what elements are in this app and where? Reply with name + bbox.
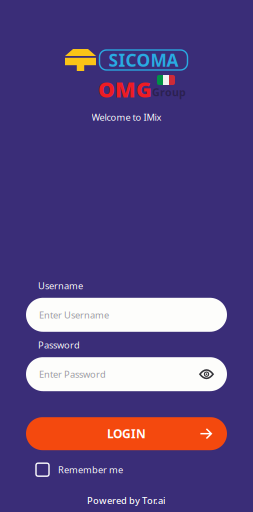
button[interactable]: Remember me xyxy=(36,463,227,476)
staticText: SICOMA xyxy=(108,48,178,71)
staticText: Remember me xyxy=(58,463,123,476)
staticText: Enter Password xyxy=(39,368,106,380)
staticText: Powered by Tor.ai xyxy=(87,494,166,507)
staticText: LOGIN xyxy=(107,426,146,442)
staticText: OMG xyxy=(98,75,152,103)
staticText: Password xyxy=(38,339,80,351)
staticText: Username xyxy=(38,279,83,292)
staticText: Welcome to IMix xyxy=(91,111,161,123)
staticText: Group xyxy=(152,85,186,99)
staticText: Enter Username xyxy=(39,309,109,321)
button[interactable]: LOGIN xyxy=(26,417,227,450)
